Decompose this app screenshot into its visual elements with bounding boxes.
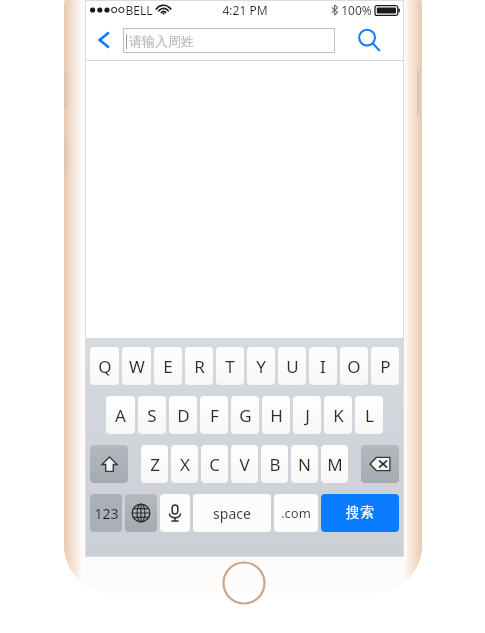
staticText: B: [269, 453, 281, 476]
staticText: M: [327, 453, 343, 476]
button[interactable]: 搜索: [321, 494, 399, 532]
staticText: 100%: [341, 2, 372, 18]
staticText: D: [177, 404, 190, 427]
staticText: O: [347, 355, 361, 378]
button[interactable]: Back: [85, 20, 123, 60]
staticText: space: [213, 504, 251, 523]
button[interactable]: Switch keyboard: [125, 494, 157, 532]
button[interactable]: P: [371, 347, 399, 385]
button[interactable]: 123: [90, 494, 122, 532]
staticText: Z: [150, 453, 160, 476]
staticText: P: [380, 355, 391, 378]
staticText: 123: [94, 504, 119, 523]
staticText: A: [115, 404, 126, 427]
button[interactable]: Shift: [90, 445, 128, 483]
button[interactable]: Y: [247, 347, 275, 385]
button[interactable]: D: [169, 396, 197, 434]
button[interactable]: G: [231, 396, 259, 434]
button[interactable]: Q: [90, 347, 119, 385]
staticText: H: [270, 404, 283, 427]
staticText: 4:21 PM: [222, 2, 268, 18]
button[interactable]: A: [106, 396, 135, 434]
staticText: W: [129, 355, 145, 378]
button[interactable]: W: [122, 347, 151, 385]
staticText: I: [320, 355, 326, 378]
button[interactable]: I: [309, 347, 337, 385]
button[interactable]: K: [324, 396, 352, 434]
staticText: F: [210, 404, 219, 427]
button[interactable]: L: [355, 396, 383, 434]
staticText: Q: [98, 355, 112, 378]
button[interactable]: Home: [222, 561, 266, 605]
button[interactable]: Dictate: [160, 494, 190, 532]
staticText: E: [163, 355, 173, 378]
staticText: .com: [281, 504, 311, 522]
button[interactable]: V: [231, 445, 258, 483]
staticText: C: [209, 453, 220, 476]
button[interactable]: 请输入周姓: [123, 28, 335, 53]
staticText: V: [239, 453, 250, 476]
button[interactable]: F: [200, 396, 228, 434]
staticText: K: [333, 404, 344, 427]
button[interactable]: B: [261, 445, 288, 483]
button[interactable]: U: [278, 347, 306, 385]
button[interactable]: Z: [141, 445, 168, 483]
staticText: G: [239, 404, 252, 427]
staticText: S: [147, 404, 157, 427]
button[interactable]: Backspace: [361, 445, 399, 483]
button[interactable]: X: [171, 445, 198, 483]
staticText: L: [365, 404, 374, 427]
button[interactable]: space: [193, 494, 271, 532]
button[interactable]: J: [293, 396, 321, 434]
button[interactable]: E: [154, 347, 182, 385]
button[interactable]: T: [216, 347, 244, 385]
button[interactable]: M: [321, 445, 348, 483]
staticText: J: [305, 404, 310, 427]
staticText: 搜索: [346, 504, 374, 522]
button[interactable]: O: [340, 347, 368, 385]
button[interactable]: R: [185, 347, 213, 385]
staticText: 请输入周姓: [129, 33, 194, 49]
staticText: R: [194, 355, 205, 378]
button[interactable]: .com: [274, 494, 318, 532]
button[interactable]: Search: [349, 20, 389, 60]
staticText: N: [298, 453, 311, 476]
staticText: X: [180, 453, 190, 476]
staticText: T: [225, 355, 235, 378]
button[interactable]: H: [262, 396, 290, 434]
staticText: BELL: [125, 2, 153, 18]
button[interactable]: C: [201, 445, 228, 483]
staticText: Y: [256, 355, 266, 378]
button[interactable]: S: [138, 396, 166, 434]
button[interactable]: N: [291, 445, 318, 483]
staticText: U: [286, 355, 299, 378]
